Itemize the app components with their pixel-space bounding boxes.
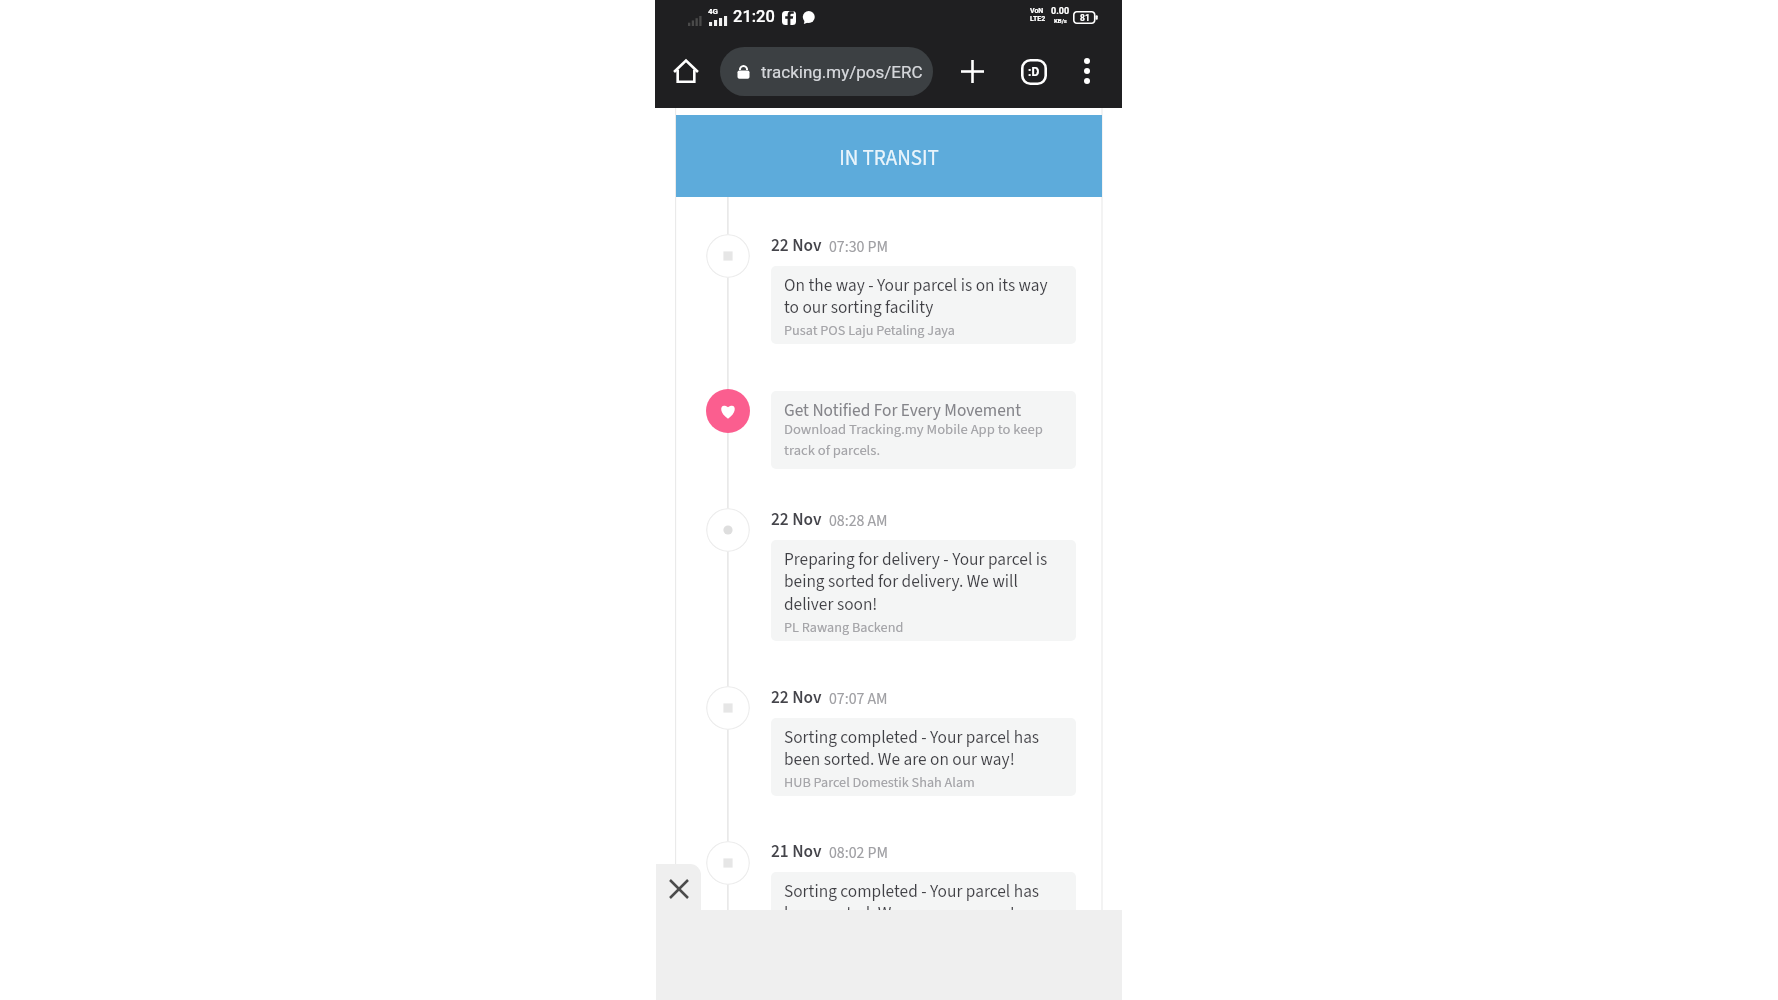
staticText: LTE2 (1030, 15, 1046, 23)
button[interactable]: Tabs (1015, 53, 1053, 91)
staticText: 22 Nov (771, 685, 822, 710)
button[interactable]: Address bar (720, 47, 933, 96)
staticText: Download Tracking.my Mobile App to keep … (784, 419, 1064, 461)
staticText: 21:20 (733, 7, 775, 26)
staticText: 21 Nov (771, 839, 822, 864)
staticText: Get Notified For Every Movement (784, 398, 1022, 423)
button[interactable]: Get Notified For Every Movement (771, 391, 1076, 469)
staticText: Sorting completed - Your parcel has been… (784, 725, 1064, 772)
staticText: Sorting completed - Your parcel has been… (784, 879, 1064, 926)
button[interactable]: Close (656, 864, 701, 911)
staticText: HUB Parcel Domestik Shah Alam (784, 772, 975, 792)
button[interactable]: Get notified (706, 389, 750, 433)
staticText: 22 Nov (771, 507, 822, 532)
staticText: 22 Nov (771, 233, 822, 258)
staticText: 08:28 AM (829, 510, 888, 532)
button[interactable]: On the way - Your parcel is on its way t… (771, 266, 1076, 344)
button[interactable]: IN TRANSIT (676, 115, 1102, 197)
staticText: IN TRANSIT (839, 143, 939, 173)
staticText: 07:07 AM (829, 688, 888, 710)
staticText: VoN (1030, 7, 1044, 15)
staticText: tracking.my/pos/ERC (761, 62, 923, 82)
staticText: On the way - Your parcel is on its way t… (784, 273, 1064, 320)
staticText: PL Rawang Backend (784, 617, 904, 637)
staticText: Pusat POS Laju Petaling Jaya (784, 320, 955, 340)
staticText: 07:30 PM (829, 236, 888, 258)
staticText: 08:02 PM (829, 842, 888, 864)
staticText: KB/s (1054, 17, 1067, 24)
staticText: 0.00 (1051, 6, 1070, 17)
staticText: 81 (1080, 13, 1090, 23)
button[interactable]: Home (668, 52, 704, 88)
button[interactable]: More options (1069, 53, 1105, 89)
button[interactable]: Sorting completed - Your parcel has been… (771, 718, 1076, 796)
button[interactable]: Sorting completed - Your parcel has been… (771, 872, 1076, 950)
staticText: 4G (708, 7, 719, 16)
staticText: Preparing for delivery - Your parcel is … (784, 547, 1064, 617)
button[interactable]: Preparing for delivery - Your parcel is … (771, 540, 1076, 641)
button[interactable]: New tab (954, 53, 991, 90)
staticText: :D (1028, 65, 1040, 79)
